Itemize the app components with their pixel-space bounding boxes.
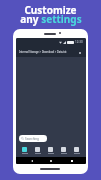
staticText: 12:30	[75, 40, 83, 44]
button[interactable]: Contact	[31, 147, 44, 154]
button[interactable]: Files	[57, 147, 70, 154]
button[interactable]: Share	[18, 147, 31, 154]
staticText: Internal Storage > Download > Data.txt	[19, 50, 67, 54]
button[interactable]: Searching	[19, 135, 47, 142]
button[interactable]: More options	[77, 50, 82, 55]
staticText: Customize	[24, 3, 77, 17]
button[interactable]: Copy	[70, 147, 83, 154]
staticText: any settings	[20, 12, 82, 26]
button[interactable]: Back	[31, 160, 33, 162]
button[interactable]: Drive	[44, 147, 57, 154]
staticText: Searching	[25, 137, 39, 141]
